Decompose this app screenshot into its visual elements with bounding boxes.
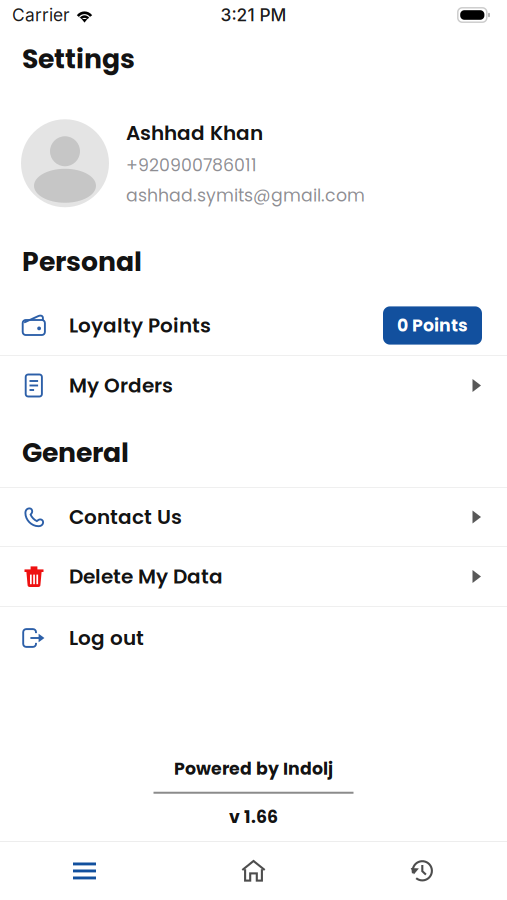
button[interactable]: My Orders [0,356,507,415]
button[interactable]: Log out [0,607,507,669]
staticText: 0 Points [397,313,468,338]
button[interactable]: Contact Us [0,488,507,546]
staticText: Loyalty Points [69,311,211,339]
staticText: Personal [22,243,142,280]
staticText: 3:21 PM [220,4,286,25]
staticText: Ashhad Khan [126,119,263,147]
button[interactable]: Menu [0,842,169,900]
button[interactable]: Loyalty Points [0,296,507,355]
staticText: Contact Us [69,503,182,531]
staticText: Carrier [12,4,70,25]
staticText: v 1.66 [229,805,278,829]
button[interactable]: History [338,842,507,900]
button[interactable]: Delete My Data [0,547,507,606]
staticText: Log out [69,624,144,652]
staticText: General [22,434,129,471]
staticText: +920900786011 [126,153,257,177]
staticText: Settings [22,40,135,78]
staticText: Powered by Indolj [174,756,333,781]
staticText: ashhad.symits@gmail.com [126,183,365,208]
staticText: My Orders [69,371,173,399]
staticText: Delete My Data [69,562,223,590]
button[interactable]: Home [169,842,338,900]
